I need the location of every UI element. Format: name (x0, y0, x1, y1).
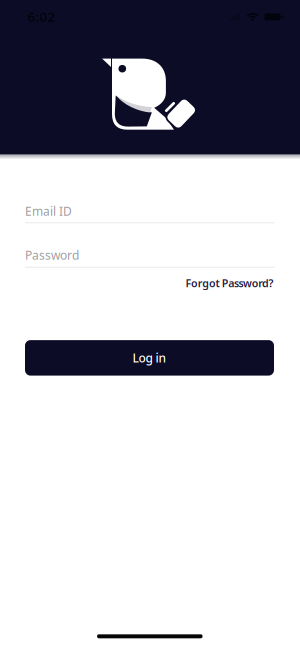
button[interactable]: Forgot Password? (185, 276, 273, 290)
staticText: Email ID (25, 203, 72, 219)
staticText: Forgot Password? (185, 276, 273, 290)
button[interactable]: Password (25, 248, 274, 268)
staticText: Log in (132, 350, 166, 366)
staticText: Password (25, 247, 79, 263)
staticText: 6:02 (27, 8, 55, 25)
button[interactable]: Log in (25, 340, 274, 376)
button[interactable]: Email ID (25, 204, 274, 223)
